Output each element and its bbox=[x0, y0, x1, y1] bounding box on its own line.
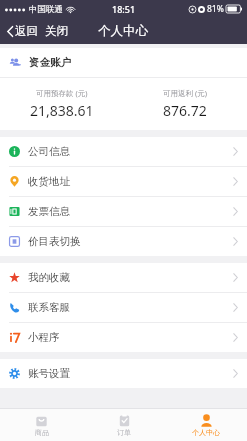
staticText: 个人中心 bbox=[98, 23, 148, 39]
button[interactable]: 我的收藏 bbox=[0, 263, 247, 292]
button[interactable]: 商品 bbox=[0, 409, 83, 441]
button[interactable]: 小程序 bbox=[0, 323, 247, 352]
staticText: 可用返利 (元) bbox=[163, 88, 207, 98]
staticText: 我的收藏 bbox=[28, 271, 70, 284]
button[interactable]: 发票信息 bbox=[0, 197, 247, 226]
staticText: 订单 bbox=[117, 428, 131, 437]
button[interactable]: 订单 bbox=[83, 409, 165, 441]
button[interactable]: 收货地址 bbox=[0, 167, 247, 196]
staticText: 81% bbox=[207, 3, 224, 15]
staticText: 小程序 bbox=[28, 331, 60, 344]
staticText: 返回 bbox=[15, 24, 38, 38]
staticText: 21,838.61 bbox=[30, 101, 94, 120]
staticText: 可用预存款 (元) bbox=[36, 88, 88, 98]
staticText: 关闭 bbox=[45, 24, 68, 38]
staticText: 876.72 bbox=[163, 101, 207, 120]
staticText: 发票信息 bbox=[28, 205, 70, 218]
staticText: 资金账户 bbox=[29, 56, 71, 69]
staticText: 中国联通 bbox=[29, 4, 63, 15]
staticText: 联系客服 bbox=[28, 301, 70, 314]
staticText: 商品 bbox=[35, 428, 49, 437]
button[interactable]: 价目表切换 bbox=[0, 227, 247, 256]
button[interactable]: 个人中心 bbox=[165, 409, 247, 441]
button[interactable]: 公司信息 bbox=[0, 137, 247, 166]
button[interactable]: 联系客服 bbox=[0, 293, 247, 322]
staticText: 18:51 bbox=[112, 3, 136, 15]
button[interactable]: 关闭 bbox=[43, 21, 70, 41]
staticText: 收货地址 bbox=[28, 175, 70, 188]
staticText: 公司信息 bbox=[28, 145, 70, 158]
staticText: 价目表切换 bbox=[28, 235, 81, 248]
button[interactable]: 账号设置 bbox=[0, 359, 247, 388]
staticText: 账号设置 bbox=[28, 367, 70, 380]
staticText: 个人中心 bbox=[192, 428, 220, 437]
button[interactable]: 返回 bbox=[5, 21, 40, 41]
